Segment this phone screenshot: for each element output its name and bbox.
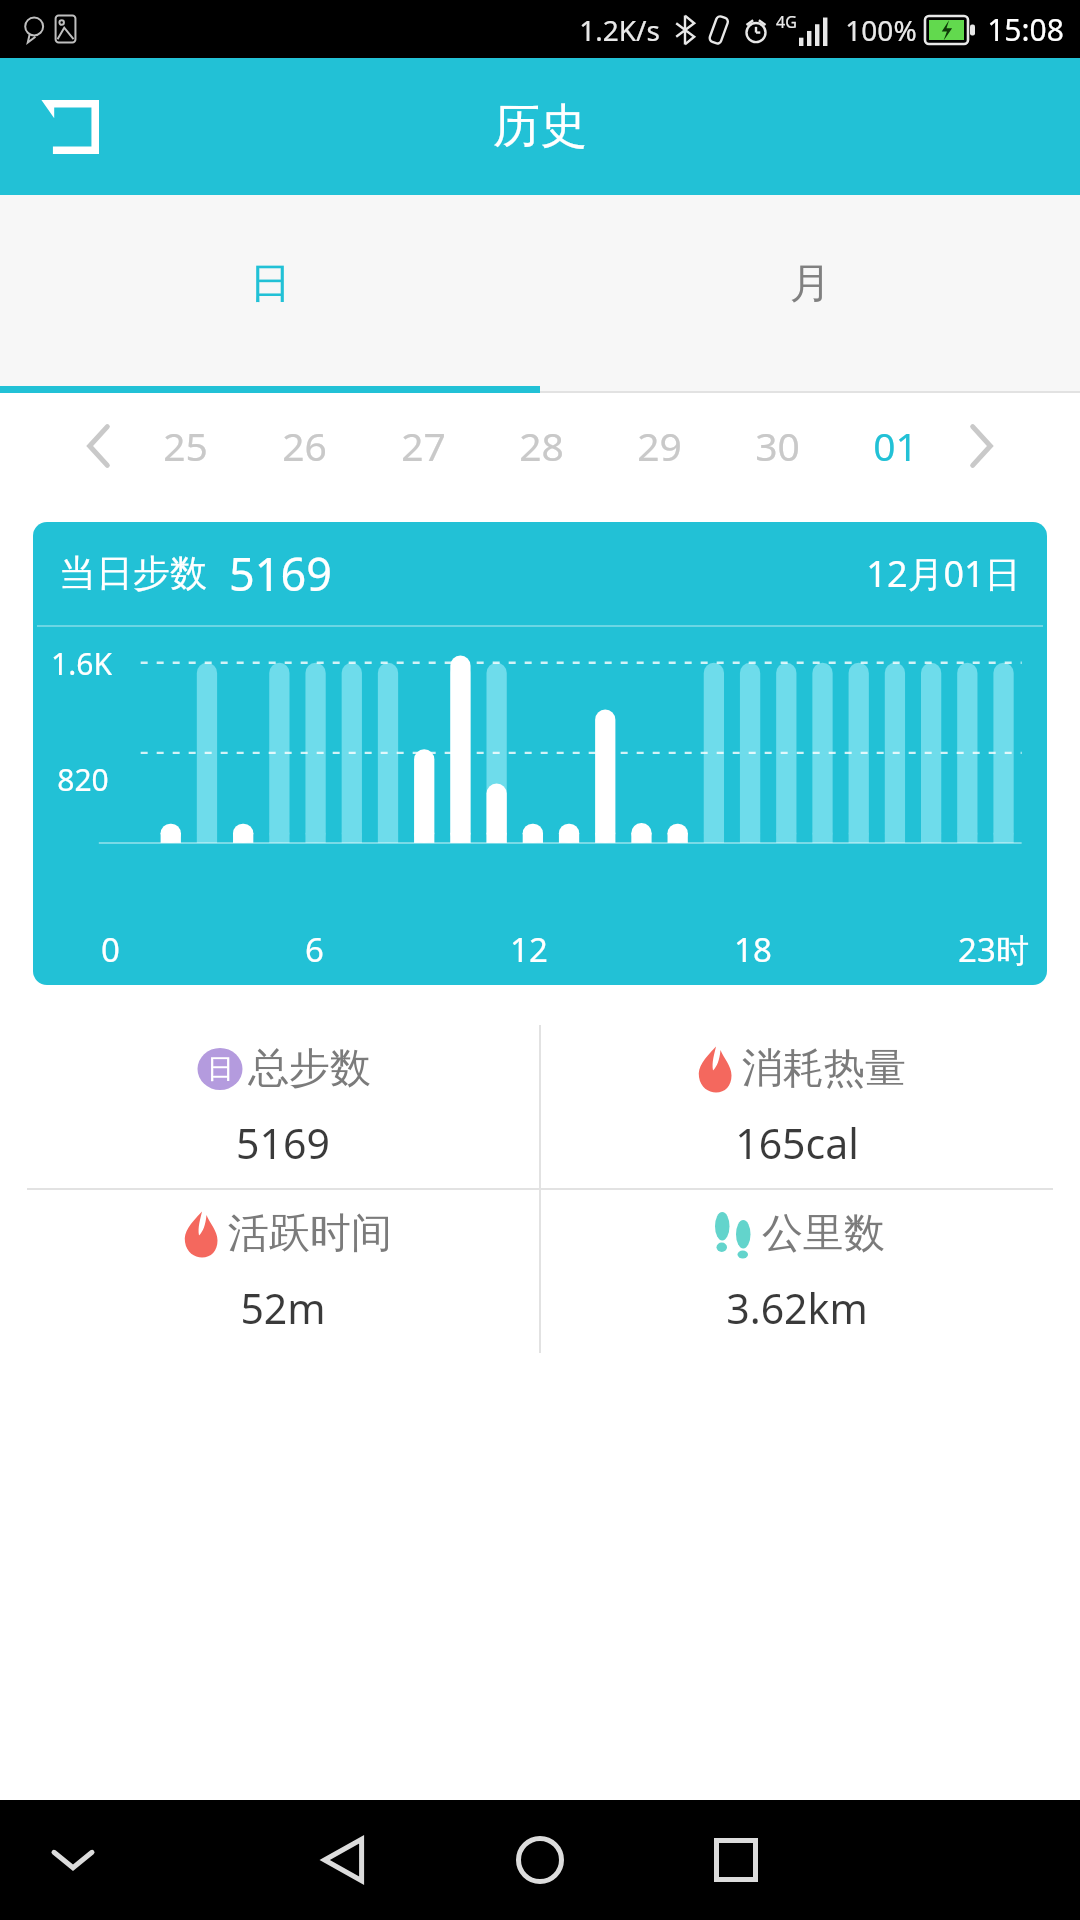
staticText: 1.2K/s [579, 11, 660, 49]
button[interactable]: 日 [0, 195, 540, 393]
button[interactable]: 活跃时间 [27, 1190, 539, 1353]
staticText: 30 [755, 419, 800, 472]
button[interactable]: Recent apps [680, 1804, 792, 1916]
staticText: 12 [510, 927, 548, 972]
staticText: 01 [873, 419, 918, 472]
button[interactable]: 消耗热量 [541, 1025, 1053, 1188]
button[interactable]: 26 [245, 393, 364, 498]
button[interactable]: Back [22, 82, 112, 172]
staticText: 25 [163, 419, 208, 472]
button[interactable]: Next days [954, 419, 1008, 473]
staticText: 4G [776, 11, 797, 33]
staticText: 100% [845, 11, 917, 49]
staticText: 28 [519, 419, 564, 472]
staticText: 29 [637, 419, 682, 472]
staticText: 6 [305, 927, 324, 972]
staticText: 3.62km [726, 1280, 868, 1336]
button[interactable]: Hide navigation bar [36, 1823, 110, 1897]
button[interactable]: 27 [364, 393, 482, 498]
staticText: 当日步数 [59, 550, 207, 597]
button[interactable]: 01 [836, 393, 954, 498]
staticText: 12月01日 [866, 549, 1021, 598]
staticText: 52m [240, 1280, 326, 1336]
staticText: 18 [734, 927, 772, 972]
staticText: 历史 [493, 97, 587, 156]
staticText: 0 [101, 927, 120, 972]
staticText: 日 [250, 258, 291, 310]
staticText: 月 [790, 258, 831, 310]
button[interactable]: 30 [718, 393, 836, 498]
button[interactable]: 月 [540, 195, 1080, 393]
staticText: 820 [57, 759, 109, 800]
button[interactable]: Previous days [72, 419, 126, 473]
staticText: 活跃时间 [228, 1208, 392, 1260]
staticText: 15:08 [987, 9, 1064, 50]
button[interactable]: 25 [126, 393, 245, 498]
staticText: 5169 [236, 1115, 330, 1171]
button[interactable]: 日 [27, 1025, 539, 1188]
staticText: 23时 [958, 927, 1029, 972]
button[interactable]: 29 [600, 393, 718, 498]
button[interactable]: Home [484, 1804, 596, 1916]
staticText: 总步数 [248, 1043, 371, 1095]
staticText: 日 [207, 1052, 234, 1086]
staticText: 27 [401, 419, 446, 472]
button[interactable]: 当日步数 [33, 522, 1047, 985]
staticText: 165cal [735, 1115, 859, 1171]
button[interactable]: 公里数 [541, 1190, 1053, 1353]
staticText: 1.6K [51, 643, 112, 684]
staticText: 5169 [229, 543, 332, 604]
staticText: 消耗热量 [742, 1043, 906, 1095]
staticText: 26 [282, 419, 327, 472]
staticText: 公里数 [762, 1208, 885, 1260]
button[interactable]: 28 [482, 393, 600, 498]
button[interactable]: Back [288, 1804, 400, 1916]
